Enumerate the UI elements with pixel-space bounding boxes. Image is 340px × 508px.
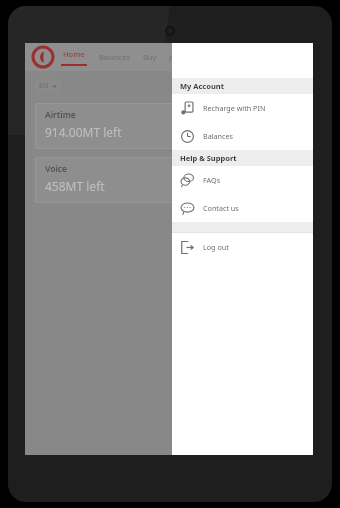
staticText: Just 4 You xyxy=(169,52,204,62)
staticText: FAQs xyxy=(203,175,221,185)
button[interactable]: Buy xyxy=(143,52,157,62)
staticText: Recharge with PIN xyxy=(203,103,266,113)
staticText: Help & Support xyxy=(180,153,237,163)
button[interactable]: Contact us xyxy=(172,194,313,222)
button[interactable]: Airtime xyxy=(35,103,303,149)
staticText: Log out xyxy=(203,242,229,252)
staticText: Airtime xyxy=(45,109,76,121)
button[interactable]: FAQs xyxy=(172,166,313,194)
button[interactable]: Voice xyxy=(35,157,303,203)
staticText: Contact us xyxy=(203,203,239,213)
button[interactable]: Home xyxy=(61,49,87,66)
staticText: Home xyxy=(63,49,85,59)
staticText: 16 Sep 2021, 1 xyxy=(258,86,303,95)
button[interactable]: EN xyxy=(35,79,61,93)
staticText: 914.00MT left xyxy=(45,124,122,140)
staticText: Voice xyxy=(45,163,68,175)
button[interactable]: Just 4 You xyxy=(169,52,204,62)
button[interactable]: Balances xyxy=(99,52,131,62)
staticText: 458MT left xyxy=(45,178,105,194)
button[interactable]: Log out xyxy=(172,233,313,261)
staticText: Buy xyxy=(143,52,157,62)
staticText: Last updated xyxy=(263,77,303,86)
button[interactable]: Balances xyxy=(172,122,313,150)
staticText: My Account xyxy=(180,81,224,91)
button[interactable]: Recharge with PIN xyxy=(172,94,313,122)
staticText: Balances xyxy=(99,52,131,62)
staticText: EN xyxy=(39,81,49,91)
staticText: Balances xyxy=(203,131,233,141)
